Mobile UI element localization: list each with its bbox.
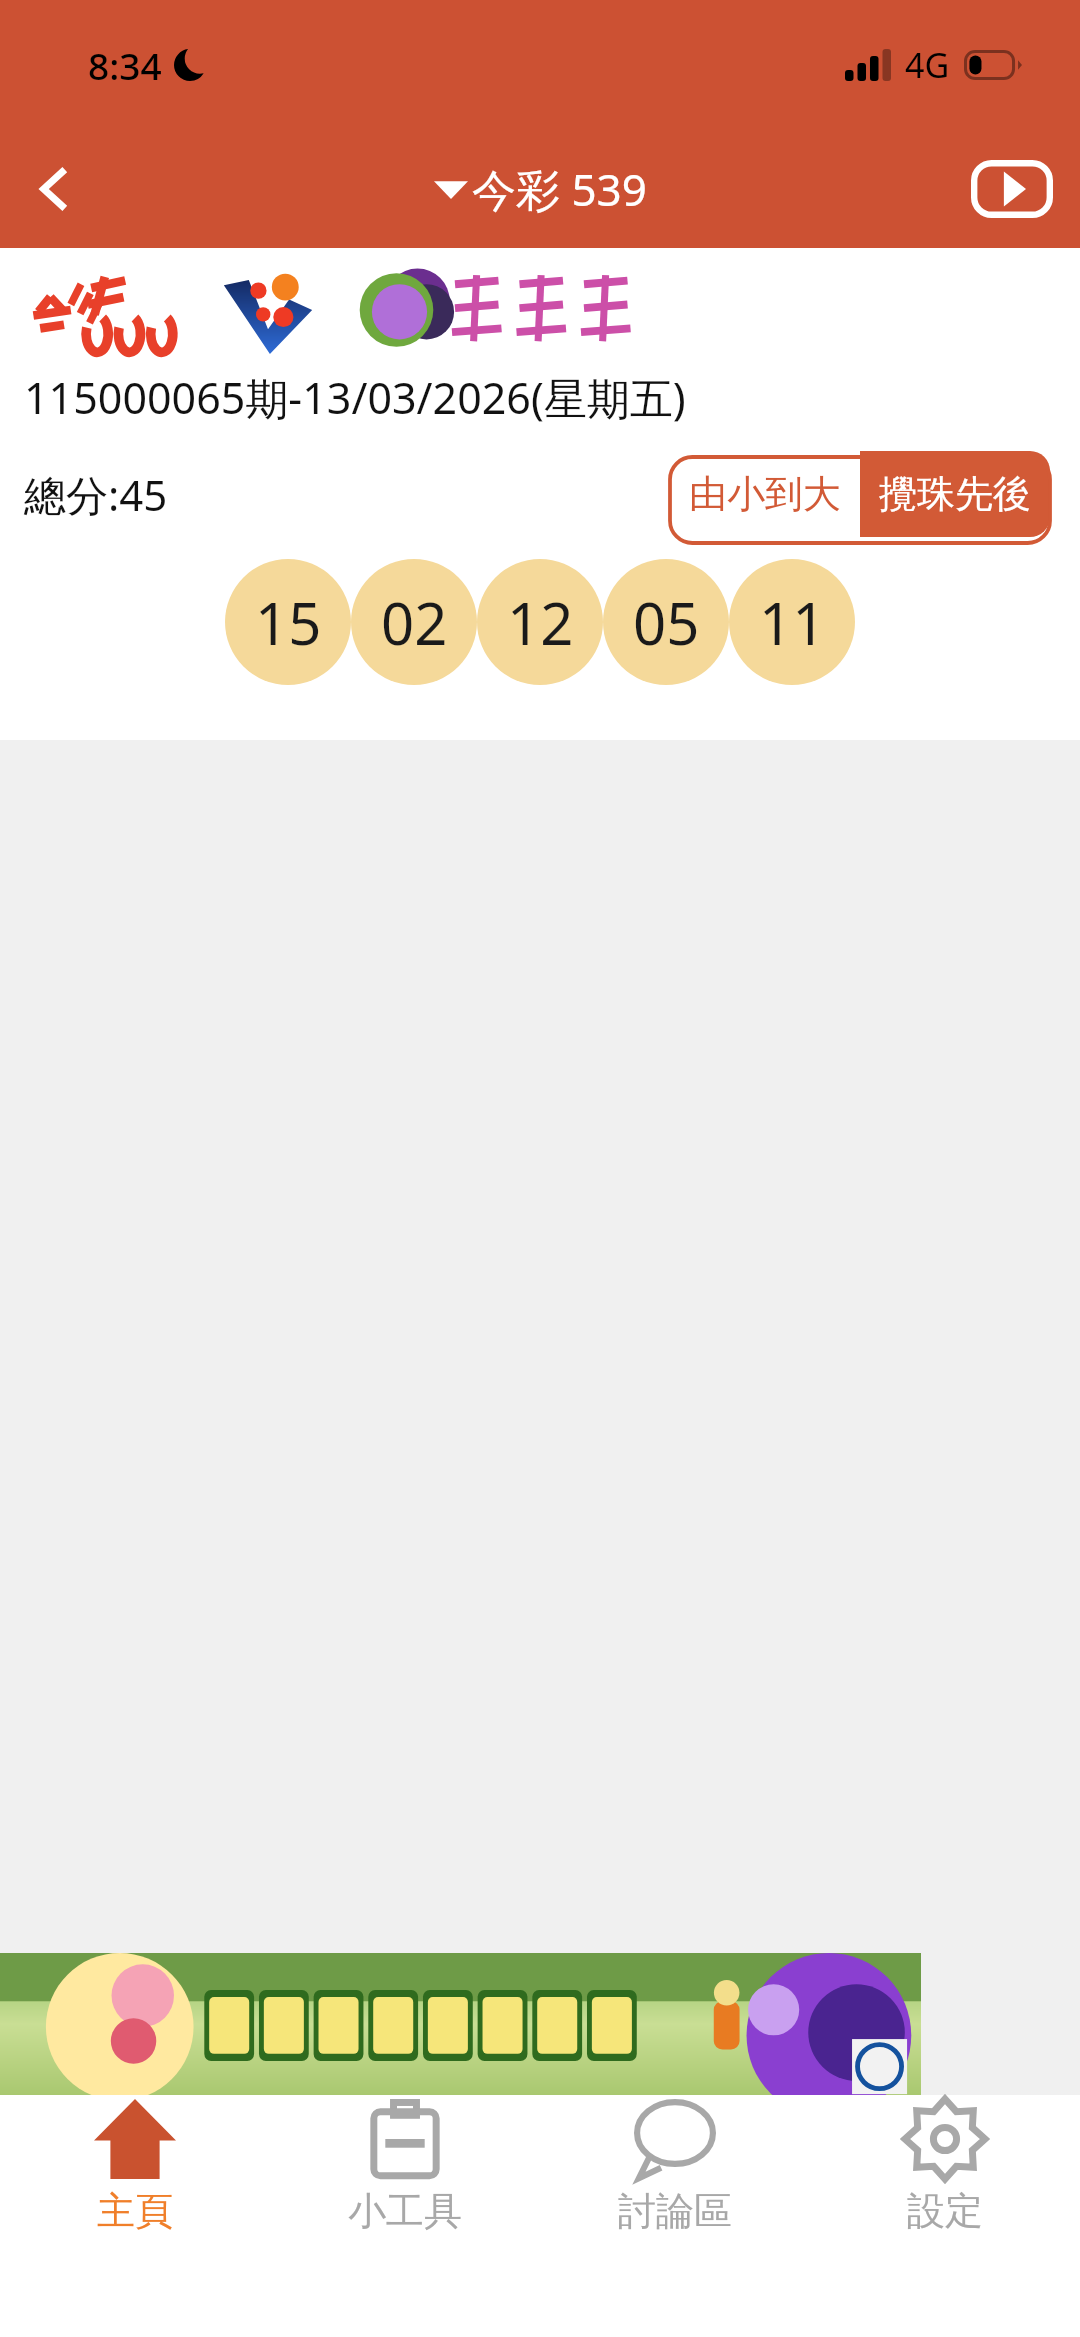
button[interactable]: 討論區 <box>540 2095 810 2265</box>
button[interactable]: 小工具 <box>270 2095 540 2265</box>
staticText: 設定 <box>907 2187 983 2235</box>
button[interactable]: Video <box>970 147 1054 231</box>
staticText: 02 <box>381 583 448 662</box>
button[interactable]: 由小到大 <box>670 451 860 537</box>
staticText: 115000065期-13/03/2026(星期五) <box>24 368 686 427</box>
staticText: 討論區 <box>618 2187 732 2235</box>
staticText: 05 <box>633 583 700 662</box>
staticText: 11 <box>759 583 826 662</box>
button[interactable]: 主頁 <box>0 2095 270 2265</box>
staticText: 主頁 <box>97 2187 173 2235</box>
staticText: 攪珠先後 <box>879 470 1031 518</box>
button[interactable]: 今彩 539 <box>434 159 647 219</box>
staticText: 總分:45 <box>24 466 168 523</box>
staticText: 15 <box>255 583 322 662</box>
staticText: 8:34 <box>88 40 162 90</box>
staticText: 由小到大 <box>689 470 841 518</box>
button[interactable]: 設定 <box>810 2095 1080 2265</box>
staticText: 12 <box>507 583 574 662</box>
staticText: 今彩 539 <box>472 159 647 219</box>
staticText: 4G <box>905 42 950 88</box>
button[interactable]: 攪珠先後 <box>860 451 1050 537</box>
staticText: 小工具 <box>348 2187 462 2235</box>
button[interactable]: Advertisement <box>0 1953 921 2095</box>
button[interactable]: Back <box>8 141 104 237</box>
